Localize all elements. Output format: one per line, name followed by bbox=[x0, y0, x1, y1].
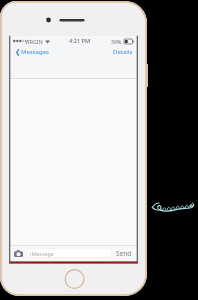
button[interactable]: Send bbox=[114, 247, 134, 260]
staticText: 39% bbox=[111, 38, 122, 45]
staticText: 4:21 PM bbox=[69, 37, 91, 45]
button[interactable]: Details bbox=[109, 46, 137, 60]
staticText: VIRGIN bbox=[25, 38, 43, 45]
staticText: Details bbox=[113, 48, 133, 56]
staticText: Send bbox=[116, 249, 132, 258]
other: Signature watermark bbox=[150, 196, 194, 214]
staticText: iMessage bbox=[30, 250, 54, 257]
button[interactable]: Take photo bbox=[13, 248, 24, 259]
button[interactable]: iMessage bbox=[26, 248, 112, 258]
button[interactable]: Messages bbox=[10, 46, 55, 60]
staticText: Messages bbox=[21, 48, 49, 56]
